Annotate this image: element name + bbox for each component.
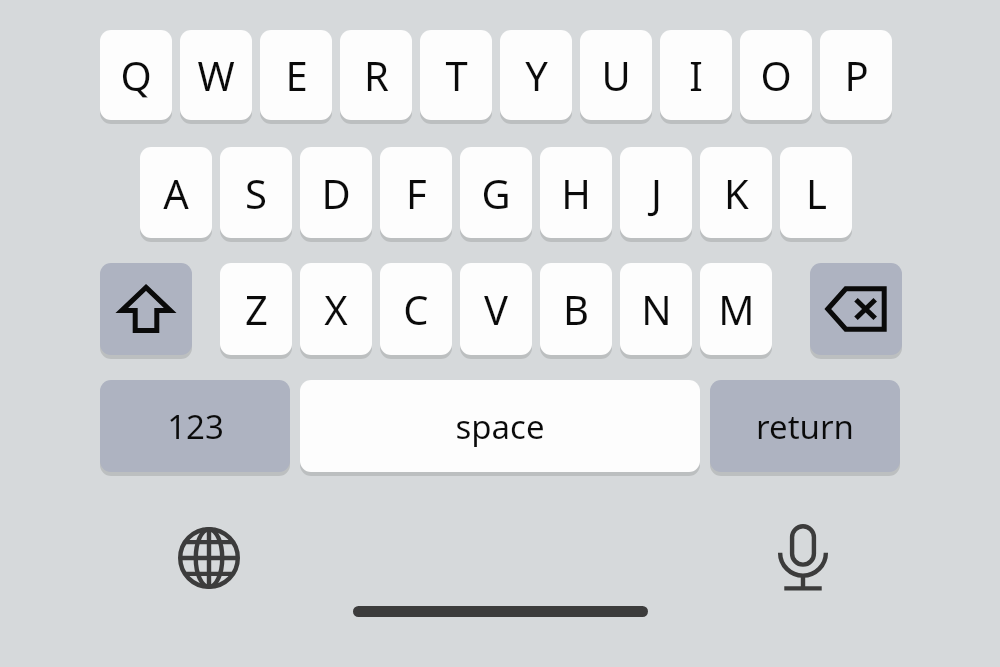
staticText: U <box>601 48 631 102</box>
button[interactable]: Y <box>500 30 572 120</box>
button[interactable]: return <box>710 380 900 472</box>
staticText: J <box>651 166 662 220</box>
button[interactable]: J <box>620 147 692 238</box>
staticText: V <box>484 282 508 336</box>
button[interactable]: 123 <box>100 380 290 472</box>
button[interactable]: Change keyboard language <box>169 518 249 598</box>
staticText: 123 <box>167 404 224 449</box>
button[interactable]: B <box>540 263 612 355</box>
button[interactable]: C <box>380 263 452 355</box>
button[interactable]: E <box>260 30 332 120</box>
staticText: Q <box>120 48 152 102</box>
staticText: space <box>455 404 545 449</box>
staticText: T <box>445 48 468 102</box>
staticText: H <box>561 166 591 220</box>
button[interactable]: S <box>220 147 292 238</box>
button[interactable]: N <box>620 263 692 355</box>
staticText: O <box>760 48 792 102</box>
button[interactable]: K <box>700 147 772 238</box>
staticText: P <box>844 48 869 102</box>
staticText: S <box>245 166 267 220</box>
button[interactable]: O <box>740 30 812 120</box>
button[interactable]: F <box>380 147 452 238</box>
button[interactable]: W <box>180 30 252 120</box>
staticText: R <box>364 48 389 102</box>
button[interactable]: Q <box>100 30 172 120</box>
staticText: K <box>724 166 749 220</box>
button[interactable]: G <box>460 147 532 238</box>
staticText: return <box>756 404 854 449</box>
staticText: B <box>563 282 589 336</box>
staticText: L <box>806 166 827 220</box>
staticText: Z <box>245 282 268 336</box>
button[interactable]: L <box>780 147 852 238</box>
button[interactable]: M <box>700 263 772 355</box>
staticText: Y <box>525 48 548 102</box>
staticText: E <box>285 48 308 102</box>
button[interactable]: Backspace <box>810 263 902 355</box>
button[interactable]: X <box>300 263 372 355</box>
staticText: G <box>481 166 511 220</box>
button[interactable]: P <box>820 30 892 120</box>
button[interactable]: H <box>540 147 612 238</box>
staticText: C <box>403 282 429 336</box>
button[interactable]: D <box>300 147 372 238</box>
staticText: D <box>321 166 351 220</box>
staticText: M <box>718 282 755 336</box>
staticText: A <box>163 166 189 220</box>
button[interactable]: R <box>340 30 412 120</box>
button[interactable]: V <box>460 263 532 355</box>
staticText: F <box>406 166 427 220</box>
staticText: X <box>324 282 348 336</box>
button[interactable]: Voice input <box>763 518 843 598</box>
button[interactable]: U <box>580 30 652 120</box>
button[interactable]: A <box>140 147 212 238</box>
button[interactable]: space <box>300 380 700 472</box>
staticText: W <box>197 48 235 102</box>
button[interactable]: Z <box>220 263 292 355</box>
button[interactable]: T <box>420 30 492 120</box>
staticText: I <box>689 48 703 102</box>
staticText: N <box>641 282 672 336</box>
button[interactable]: Shift <box>100 263 192 355</box>
button[interactable]: I <box>660 30 732 120</box>
